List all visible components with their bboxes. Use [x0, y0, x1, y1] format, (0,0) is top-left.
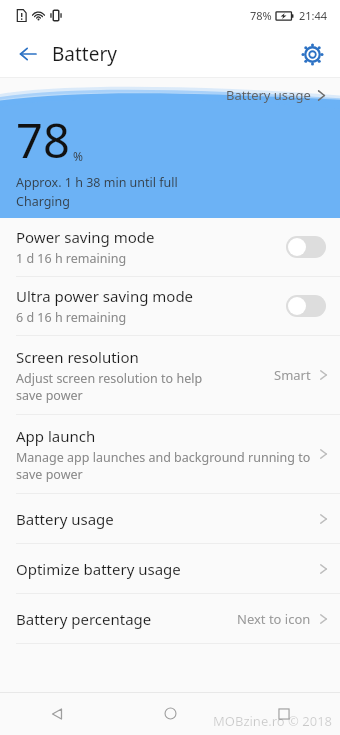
staticText: Approx. 1 h 38 min until full [16, 174, 178, 191]
staticText: Battery [52, 41, 117, 67]
staticText: Optimize battery usage [16, 559, 319, 579]
staticText: Battery percentage [16, 609, 237, 629]
staticText: 21:44 [299, 8, 328, 23]
button[interactable]: App launch [0, 415, 340, 493]
button[interactable]: Ultra power saving mode [0, 277, 340, 335]
button[interactable]: Battery usage [0, 494, 340, 543]
button[interactable]: Power saving mode [286, 236, 326, 258]
button[interactable]: Ultra power saving mode [286, 295, 326, 317]
staticText: % [73, 148, 83, 164]
button[interactable]: Back [0, 692, 114, 735]
button[interactable]: Optimize battery usage [0, 544, 340, 593]
staticText: Power saving mode [16, 227, 155, 247]
button[interactable]: Battery percentage [0, 594, 340, 643]
staticText: Manage app launches and background runni… [16, 449, 311, 482]
button[interactable]: Settings [292, 34, 332, 74]
button[interactable]: Back [8, 34, 48, 74]
staticText: Next to icon [237, 610, 311, 628]
staticText: Battery usage [226, 86, 311, 104]
staticText: Adjust screen resolution to help save po… [16, 370, 203, 403]
staticText: App launch [16, 426, 96, 446]
staticText: 1 d 16 h remaining [16, 250, 127, 267]
staticText: Battery usage [16, 509, 319, 529]
button[interactable]: Recent apps [227, 692, 340, 735]
staticText: Ultra power saving mode [16, 286, 194, 306]
staticText: Smart [274, 366, 311, 384]
staticText: Screen resolution [16, 347, 139, 367]
staticText: 78% [250, 8, 272, 23]
staticText: 6 d 16 h remaining [16, 309, 127, 326]
button[interactable]: Battery usage [224, 84, 328, 106]
staticText: MOBzine.ro © 2018 [212, 712, 332, 730]
button[interactable]: Power saving mode [0, 218, 340, 276]
button[interactable]: Screen resolution [0, 336, 340, 414]
staticText: 78 [16, 108, 70, 172]
staticText: Charging [16, 193, 71, 210]
button[interactable]: Home [114, 692, 227, 735]
